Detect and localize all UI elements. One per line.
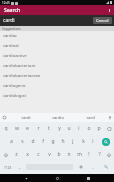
staticText: cardiologist <box>3 93 26 99</box>
button[interactable]: r <box>33 122 44 135</box>
staticText: b <box>57 151 61 158</box>
staticText: ? <box>98 151 101 158</box>
button[interactable]: Cancel <box>93 17 112 24</box>
staticText: l <box>92 138 94 145</box>
staticText: a <box>10 138 13 145</box>
staticText: e <box>26 125 29 132</box>
button[interactable]: c <box>33 148 44 161</box>
button[interactable]: o <box>84 122 94 135</box>
button[interactable]: 🔍 <box>98 161 114 173</box>
staticText: v <box>48 151 51 158</box>
button[interactable]: ? <box>94 148 104 161</box>
staticText: cardinal <box>3 43 19 49</box>
staticText: . <box>92 164 94 171</box>
staticText: 12:45 <box>2 1 10 5</box>
staticText: g <box>51 138 55 145</box>
button[interactable]: b <box>54 148 64 161</box>
button[interactable]: Voice input <box>106 113 114 122</box>
staticText: m <box>77 151 82 158</box>
button[interactable]: cardiac <box>0 31 114 41</box>
button[interactable]: Emoji <box>0 113 9 122</box>
button[interactable]: Recent apps <box>83 174 93 182</box>
staticText: cardiobacterium <box>3 63 36 69</box>
staticText: d <box>31 138 35 145</box>
staticText: z <box>15 151 18 158</box>
button[interactable]: More options <box>105 5 114 15</box>
button[interactable]: cardi <box>0 15 93 26</box>
button[interactable]: cardiobacteriaceae <box>0 71 114 81</box>
staticText: r <box>37 125 40 132</box>
button[interactable]: f <box>38 135 48 148</box>
button[interactable]: cardiologist <box>0 91 114 101</box>
staticText: cardiac <box>3 33 18 39</box>
staticText: n <box>67 151 71 158</box>
button[interactable]: , <box>15 161 25 173</box>
button[interactable]: cardiogenic <box>0 81 114 91</box>
staticText: x <box>26 151 29 158</box>
staticText: h <box>61 138 65 145</box>
button[interactable]: cardinal <box>0 41 114 51</box>
staticText: cardio <box>52 115 64 120</box>
staticText: w <box>15 125 19 132</box>
button[interactable]: ?123 <box>0 161 15 173</box>
button[interactable]: x <box>22 148 33 161</box>
staticText: ! <box>88 151 90 158</box>
button[interactable]: k <box>78 135 88 148</box>
staticText: , <box>19 164 21 171</box>
button[interactable]: m <box>74 148 84 161</box>
staticText: cardiogenic <box>3 83 26 89</box>
button[interactable]: Home <box>52 174 62 182</box>
button[interactable]: v <box>44 148 54 161</box>
button[interactable]: s <box>17 135 28 148</box>
staticText: s <box>21 138 24 145</box>
button[interactable]: u <box>64 122 74 135</box>
staticText: k <box>82 138 85 145</box>
button[interactable]: y <box>54 122 64 135</box>
staticText: i <box>78 125 80 132</box>
button[interactable]: Backspace <box>104 122 114 135</box>
staticText: o <box>87 125 91 132</box>
button[interactable]: d <box>28 135 38 148</box>
button[interactable]: cardiobacterium <box>0 61 114 71</box>
button[interactable]: Search <box>98 135 114 148</box>
button[interactable]: q <box>0 122 11 135</box>
button[interactable]: i <box>74 122 84 135</box>
staticText: c <box>37 151 40 158</box>
button[interactable]: t <box>44 122 54 135</box>
staticText: p <box>97 125 101 132</box>
staticText: t <box>48 125 50 132</box>
button[interactable]: card <box>74 113 106 122</box>
button[interactable]: j <box>68 135 78 148</box>
staticText: f <box>42 138 44 145</box>
staticText: cardioactive <box>3 53 27 59</box>
button[interactable]: Shift <box>104 148 114 161</box>
button[interactable]: l <box>88 135 98 148</box>
staticText: Search <box>4 7 21 14</box>
button[interactable]: cardio <box>42 113 74 122</box>
staticText: cardi <box>3 17 15 24</box>
button[interactable]: z <box>11 148 22 161</box>
button[interactable]: e <box>22 122 33 135</box>
staticText: cardi <box>21 115 31 120</box>
staticText: card <box>86 115 95 120</box>
staticText: u <box>67 125 71 132</box>
button[interactable]: Settings <box>74 161 88 173</box>
button[interactable]: cardioactive <box>0 51 114 61</box>
staticText: 🔍 <box>104 165 109 169</box>
staticText: ?123 <box>4 165 12 170</box>
button[interactable]: h <box>58 135 68 148</box>
staticText: q <box>4 125 8 132</box>
button[interactable]: w <box>11 122 22 135</box>
button[interactable]: p <box>94 122 104 135</box>
button[interactable]: n <box>64 148 74 161</box>
button[interactable]: a <box>6 135 17 148</box>
button[interactable]: ! <box>84 148 94 161</box>
button[interactable]: cardi <box>9 113 42 122</box>
button[interactable]: Shift <box>0 148 11 161</box>
staticText: cardiobacteriaceae <box>3 73 41 79</box>
staticText: y <box>58 125 61 132</box>
button[interactable]: Back <box>21 174 31 182</box>
button[interactable]: g <box>48 135 58 148</box>
